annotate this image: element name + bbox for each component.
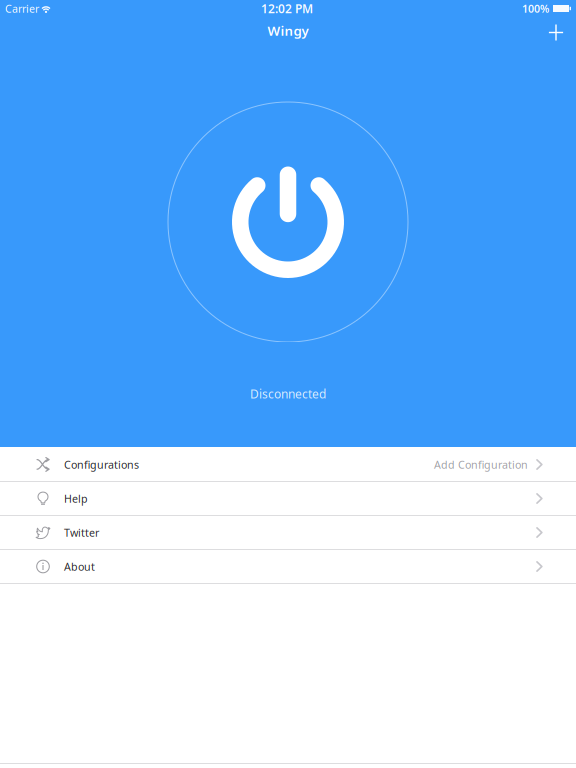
staticText: Disconnected bbox=[250, 386, 326, 402]
button[interactable]: Add configuration bbox=[536, 16, 576, 45]
staticText: Help bbox=[64, 491, 88, 506]
staticText: About bbox=[64, 559, 95, 574]
button[interactable]: Configurations bbox=[0, 448, 576, 481]
staticText: Wingy bbox=[267, 22, 308, 39]
button[interactable]: Help bbox=[0, 482, 576, 515]
button[interactable]: Connect bbox=[168, 102, 408, 342]
staticText: Twitter bbox=[64, 525, 99, 540]
staticText: 12:02 PM bbox=[261, 0, 313, 16]
button[interactable]: About bbox=[0, 550, 576, 583]
staticText: Add Configuration bbox=[434, 457, 528, 472]
staticText: 100% bbox=[522, 1, 549, 16]
staticText: Configurations bbox=[64, 457, 139, 472]
button[interactable]: Twitter bbox=[0, 516, 576, 549]
staticText: Carrier bbox=[5, 1, 39, 16]
